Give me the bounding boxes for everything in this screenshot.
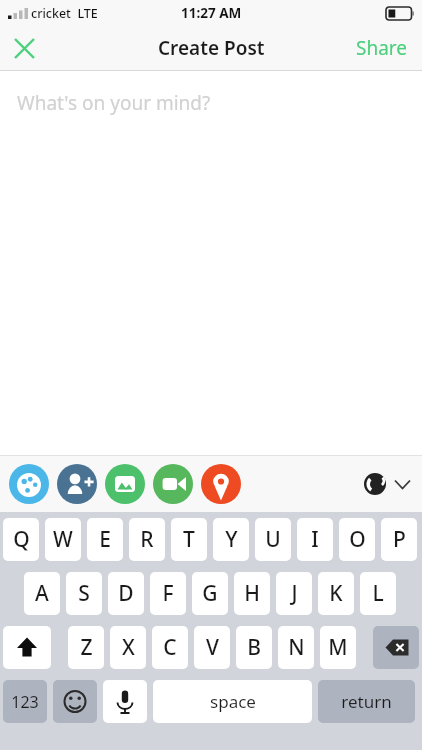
- button[interactable]: M: [320, 626, 356, 669]
- staticText: V: [206, 633, 219, 662]
- staticText: Share: [356, 35, 408, 61]
- staticText: B: [247, 633, 261, 662]
- button[interactable]: Dictate: [103, 680, 147, 723]
- staticText: Q: [13, 525, 30, 554]
- button[interactable]: X: [110, 626, 146, 669]
- staticText: C: [163, 633, 177, 662]
- staticText: U: [265, 525, 281, 554]
- button[interactable]: Location: [201, 464, 241, 504]
- staticText: T: [183, 525, 195, 554]
- staticText: M: [328, 633, 348, 662]
- button[interactable]: Share: [352, 29, 412, 67]
- staticText: E: [99, 525, 111, 554]
- staticText: H: [244, 579, 260, 608]
- staticText: space: [210, 690, 256, 713]
- staticText: G: [202, 579, 218, 608]
- button[interactable]: D: [108, 572, 144, 615]
- staticText: A: [35, 579, 49, 608]
- button[interactable]: N: [278, 626, 314, 669]
- button[interactable]: Backspace: [373, 626, 419, 669]
- staticText: J: [291, 579, 298, 608]
- staticText: Y: [225, 525, 238, 554]
- button[interactable]: T: [171, 518, 207, 561]
- button[interactable]: O: [339, 518, 375, 561]
- button[interactable]: H: [234, 572, 270, 615]
- button[interactable]: V: [194, 626, 230, 669]
- staticText: N: [288, 633, 305, 662]
- staticText: F: [162, 579, 174, 608]
- button[interactable]: E: [87, 518, 123, 561]
- staticText: What's on your mind?: [17, 90, 211, 116]
- button[interactable]: Q: [3, 518, 39, 561]
- staticText: cricket LTE: [31, 5, 98, 22]
- staticText: Create Post: [158, 35, 265, 61]
- button[interactable]: Z: [68, 626, 104, 669]
- button[interactable]: S: [66, 572, 102, 615]
- button[interactable]: space: [153, 680, 312, 723]
- staticText: O: [349, 525, 366, 554]
- button[interactable]: Shift: [3, 626, 51, 669]
- button[interactable]: A: [24, 572, 60, 615]
- staticText: D: [118, 579, 134, 608]
- button[interactable]: K: [318, 572, 354, 615]
- button[interactable]: B: [236, 626, 272, 669]
- staticText: Z: [80, 633, 93, 662]
- staticText: I: [311, 525, 319, 554]
- staticText: W: [53, 525, 73, 554]
- button[interactable]: W: [45, 518, 81, 561]
- staticText: 11:27 AM: [181, 4, 242, 22]
- staticText: return: [341, 690, 392, 713]
- button[interactable]: F: [150, 572, 186, 615]
- button[interactable]: Emoji: [53, 680, 97, 723]
- button[interactable]: C: [152, 626, 188, 669]
- button[interactable]: Y: [213, 518, 249, 561]
- staticText: L: [372, 579, 384, 608]
- button[interactable]: return: [318, 680, 415, 723]
- staticText: R: [140, 525, 154, 554]
- button[interactable]: Background colour: [9, 464, 49, 504]
- button[interactable]: Close: [0, 26, 48, 70]
- button[interactable]: U: [255, 518, 291, 561]
- button[interactable]: J: [276, 572, 312, 615]
- staticText: X: [122, 633, 135, 662]
- button[interactable]: Photo: [105, 464, 145, 504]
- staticText: K: [329, 579, 343, 608]
- button[interactable]: R: [129, 518, 165, 561]
- button[interactable]: I: [297, 518, 333, 561]
- staticText: P: [393, 525, 406, 554]
- button[interactable]: 123: [3, 680, 47, 723]
- button[interactable]: P: [381, 518, 417, 561]
- button[interactable]: L: [360, 572, 396, 615]
- staticText: 123: [11, 691, 39, 713]
- button[interactable]: Tag people: [57, 464, 97, 504]
- button[interactable]: G: [192, 572, 228, 615]
- staticText: S: [78, 579, 90, 608]
- button[interactable]: Audience: Public: [364, 473, 410, 495]
- button[interactable]: Video: [153, 464, 193, 504]
